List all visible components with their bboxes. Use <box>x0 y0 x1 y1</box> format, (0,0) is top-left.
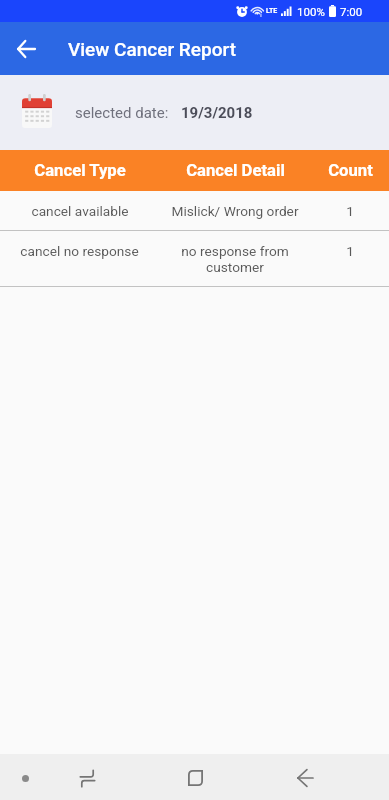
staticText: 1 <box>346 243 354 259</box>
button[interactable]: cancel no response <box>0 231 389 287</box>
staticText: 100% <box>297 5 325 18</box>
button[interactable]: More options <box>7 760 43 796</box>
staticText: Mislick/ Wrong order <box>171 203 299 219</box>
staticText: no response from customer <box>181 243 289 275</box>
button[interactable]: Recent apps <box>69 760 105 796</box>
button[interactable]: Home <box>177 760 213 796</box>
button[interactable]: cancel available <box>0 191 389 231</box>
button[interactable]: Back <box>9 32 43 66</box>
staticText: selected date: <box>75 104 169 122</box>
staticText: 7:00 <box>340 5 363 18</box>
staticText: 1 <box>346 203 354 219</box>
button[interactable]: selected date: <box>0 75 389 150</box>
staticText: Count <box>328 161 373 181</box>
staticText: Cancel Type <box>34 161 126 181</box>
staticText: cancel no response <box>20 243 139 259</box>
staticText: 19/3/2018 <box>181 104 253 122</box>
staticText: Cancel Detail <box>186 161 285 181</box>
staticText: LTE <box>266 7 278 15</box>
staticText: cancel available <box>31 203 129 219</box>
button[interactable]: Back <box>287 760 323 796</box>
staticText: View Cancer Report <box>68 38 236 60</box>
